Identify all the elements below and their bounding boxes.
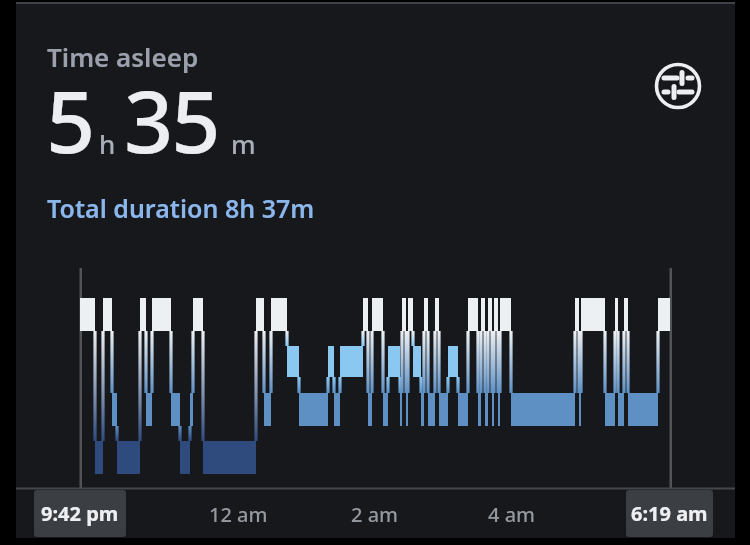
staticText: h	[99, 126, 116, 161]
staticText: 4 am	[488, 501, 536, 528]
staticText: 12 am	[209, 501, 268, 528]
staticText: 5	[46, 61, 94, 178]
staticText: 6:19 am	[631, 500, 708, 527]
button[interactable]: 6:19 am	[626, 490, 713, 537]
staticText: m	[231, 126, 256, 161]
staticText: 9:42 pm	[41, 500, 119, 527]
staticText: 35	[124, 61, 219, 178]
button[interactable]	[650, 58, 706, 114]
button[interactable]: 9:42 pm	[34, 490, 126, 537]
staticText: 2 am	[351, 501, 399, 528]
staticText: Time asleep	[47, 39, 199, 74]
staticText: Total duration 8h 37m	[47, 191, 315, 225]
